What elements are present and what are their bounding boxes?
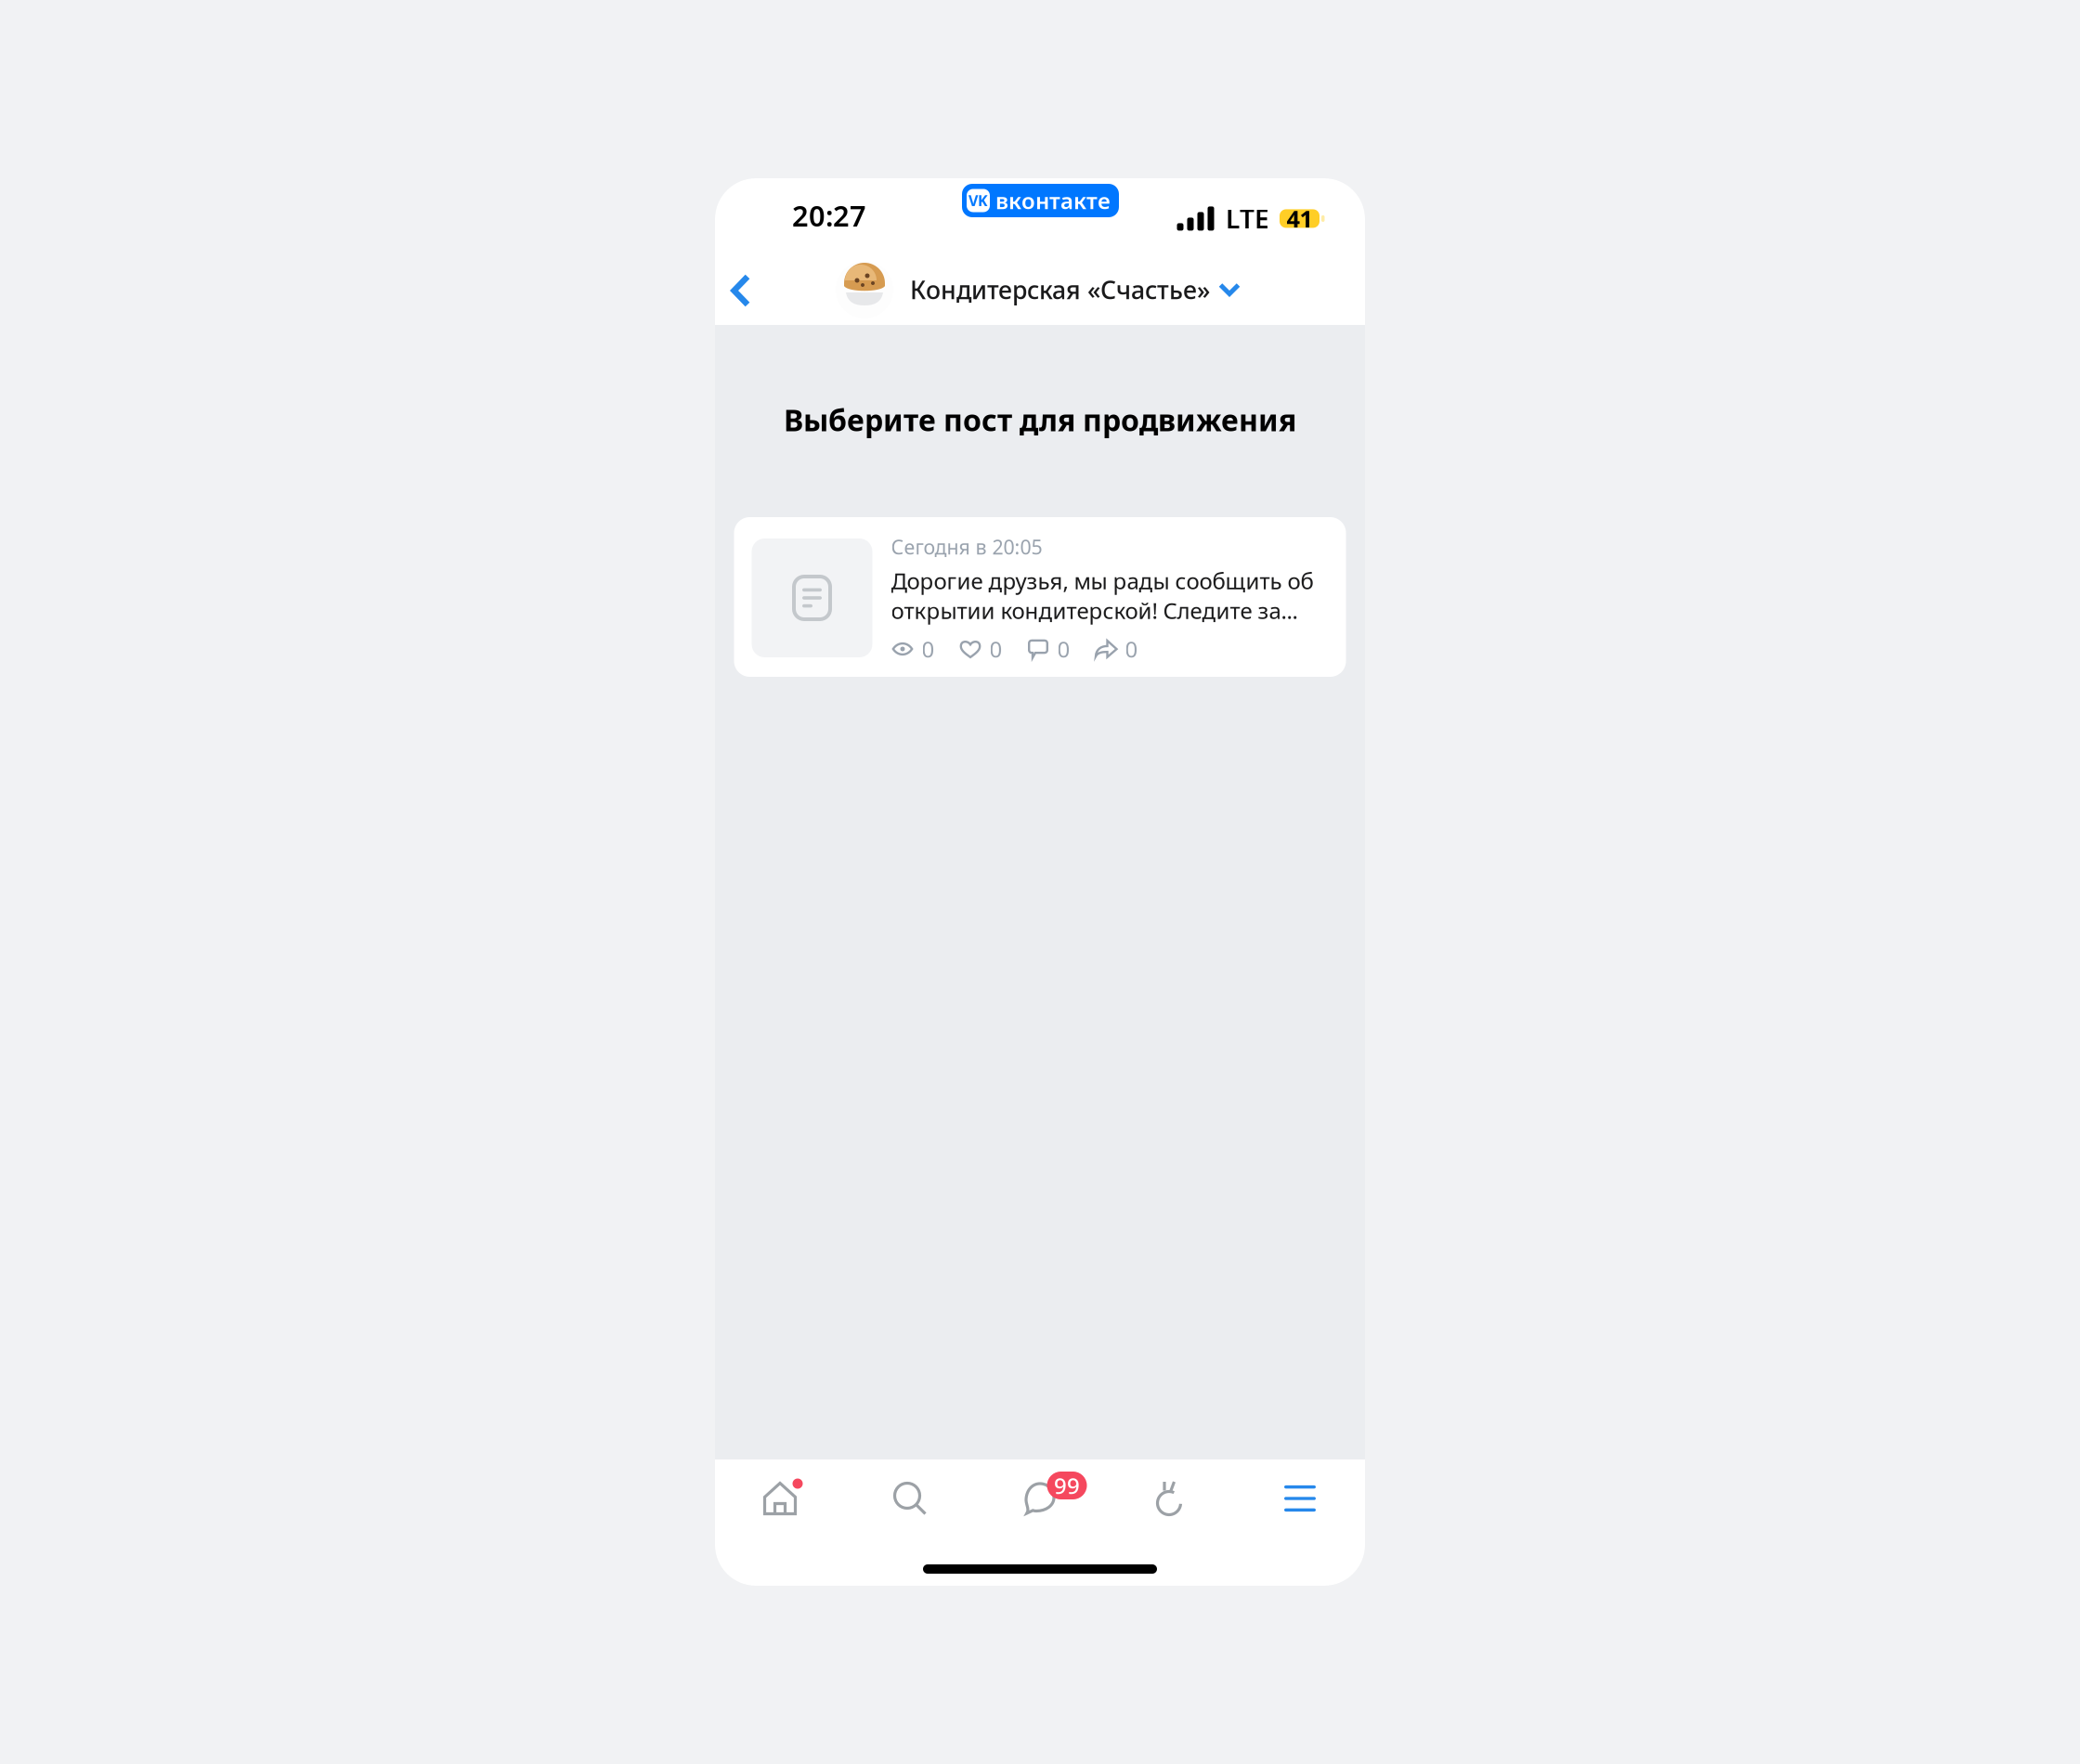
button[interactable]: Меню [1235, 1472, 1365, 1524]
button[interactable]: Сообщения [975, 1472, 1105, 1524]
staticText: Сегодня в 20:05 [891, 534, 1042, 560]
button[interactable]: Кондитерская «Счастье» [836, 253, 1241, 326]
staticText: Кондитерская «Счастье» [910, 273, 1210, 306]
staticText: VK [968, 191, 988, 210]
staticText: 0 [989, 634, 1002, 664]
staticText: вконтакте [995, 186, 1111, 215]
button[interactable]: Новости [715, 1472, 845, 1524]
staticText: 41 [1287, 203, 1313, 234]
staticText: 20:27 [792, 196, 866, 234]
button[interactable]: Сегодня в 20:05 [734, 517, 1346, 677]
staticText: 0 [1125, 634, 1138, 664]
staticText: открытии кондитерской! Следите за... [891, 596, 1298, 625]
button[interactable]: Поиск [845, 1472, 975, 1524]
staticText: Дорогие друзья, мы рады сообщить об [891, 566, 1313, 596]
button[interactable]: Клипы [1105, 1472, 1235, 1524]
staticText: Выберите пост для продвижения [784, 400, 1296, 439]
staticText: 0 [922, 634, 935, 664]
button[interactable]: Назад [726, 262, 778, 319]
staticText: LTE [1226, 201, 1269, 236]
staticText: 0 [1057, 634, 1070, 664]
staticText: 99 [1054, 1471, 1080, 1500]
